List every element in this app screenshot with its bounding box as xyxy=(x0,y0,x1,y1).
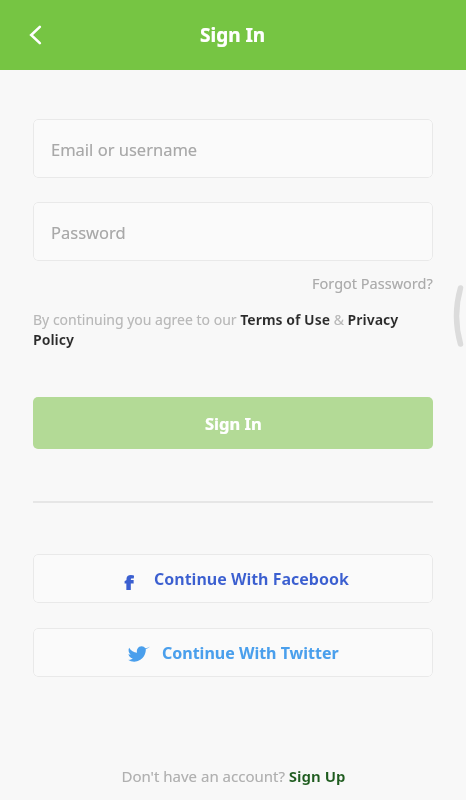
staticText: By continuing you agree to our Terms of … xyxy=(33,310,433,349)
button[interactable]: Back xyxy=(12,11,60,59)
button[interactable]: By continuing you agree to our Terms of … xyxy=(33,310,433,349)
button[interactable]: Password xyxy=(33,202,433,261)
staticText: Don't have an account? Sign Up xyxy=(121,766,346,786)
staticText: Continue With Facebook xyxy=(154,568,349,590)
staticText: Forgot Password? xyxy=(312,273,433,293)
staticText: f xyxy=(124,568,134,590)
staticText: Email or username xyxy=(51,138,198,160)
staticText: Continue With Twitter xyxy=(162,642,339,664)
button[interactable]: Continue With Twitter xyxy=(33,628,433,677)
staticText: Sign In xyxy=(200,22,266,48)
staticText: Password xyxy=(51,221,126,243)
button[interactable]: Don't have an account? Sign Up xyxy=(0,762,466,790)
button[interactable]: Email or username xyxy=(33,119,433,178)
button[interactable]: Forgot Password? xyxy=(312,273,433,293)
button[interactable]: Sign In xyxy=(33,397,433,449)
staticText: Sign In xyxy=(205,412,262,434)
button[interactable]: f xyxy=(33,554,433,603)
